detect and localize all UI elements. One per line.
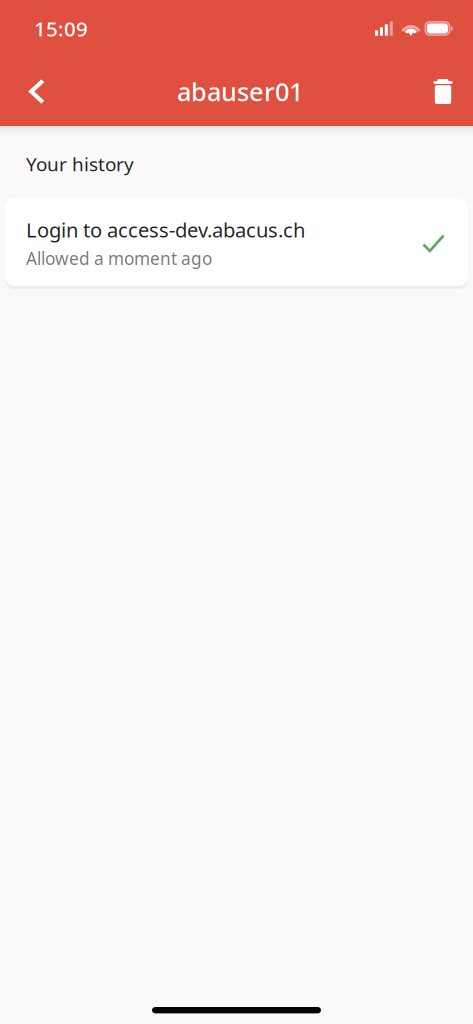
staticText: Allowed a moment ago [26,246,212,270]
staticText: Your history [26,151,134,177]
staticText: 15:09 [34,14,88,42]
button[interactable]: Back [9,62,65,120]
staticText: abauser01 [177,74,303,109]
button[interactable]: Login to access-dev.abacus.ch [5,198,468,289]
staticText: Login to access-dev.abacus.ch [26,216,305,243]
button[interactable]: Delete history [415,62,471,120]
